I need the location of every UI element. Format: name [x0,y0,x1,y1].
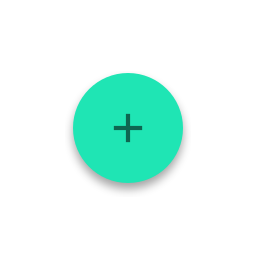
button[interactable]: Add [73,73,183,183]
